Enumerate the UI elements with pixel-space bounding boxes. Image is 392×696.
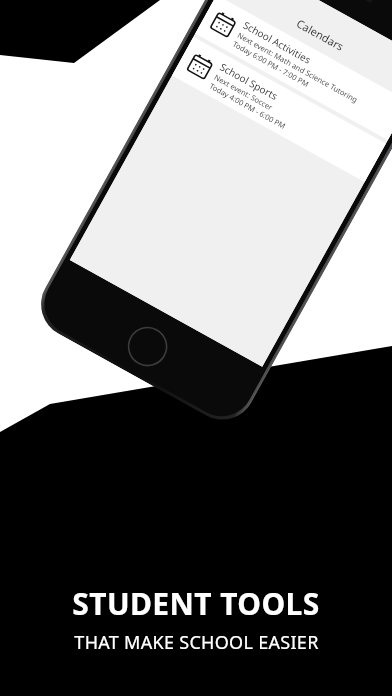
staticText: Next event: Soccer (213, 72, 275, 113)
button[interactable]: Back (225, 0, 252, 2)
staticText: STUDENT TOOLS (72, 583, 320, 624)
staticText: THAT MAKE SCHOOL EASIER (74, 630, 319, 655)
button[interactable]: School Activities (203, 0, 392, 136)
button[interactable]: School Sports (180, 41, 378, 178)
staticText: School Sports (217, 60, 280, 103)
staticText: Today 4:00 PM - 6:00 PM (208, 81, 288, 131)
staticText: Calendars (294, 16, 347, 54)
staticText: Today 6:00 PM - 7:00 PM (231, 39, 311, 89)
staticText: Next event: Math and Science Tutoring (236, 30, 360, 105)
staticText: School Activities (241, 18, 314, 67)
